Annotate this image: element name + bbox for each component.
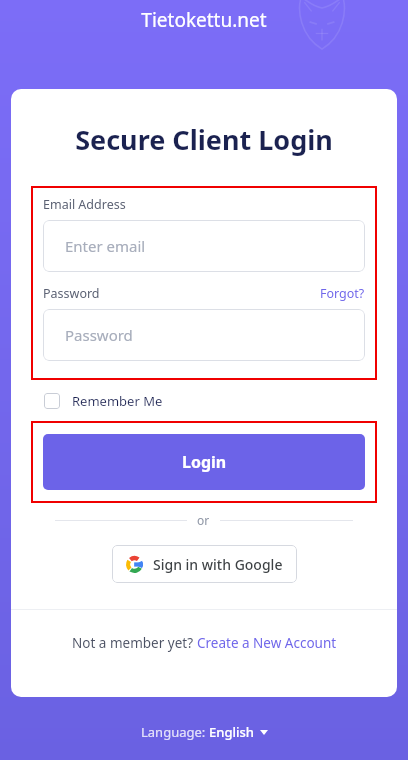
staticText: Forgot?	[320, 285, 365, 302]
staticText: Login	[182, 451, 227, 473]
staticText: Not a member yet?	[72, 634, 197, 652]
staticText: Tietokettu.net	[141, 7, 267, 33]
staticText: Secure Client Login	[11, 121, 397, 158]
staticText: Enter email	[65, 236, 146, 256]
staticText: or	[197, 512, 210, 528]
button[interactable]: Login	[43, 434, 365, 490]
button[interactable]: Language:	[141, 723, 268, 741]
button[interactable]: Password	[43, 309, 365, 361]
other: Google logo	[126, 556, 143, 573]
button[interactable]: Google logo	[112, 545, 297, 583]
staticText: Language:	[141, 723, 209, 741]
staticText: Email Address	[43, 196, 126, 213]
staticText: Password	[65, 325, 133, 345]
button[interactable]: Enter email	[43, 220, 365, 272]
staticText: Create a New Account	[197, 634, 337, 652]
staticText: Sign in with Google	[153, 555, 283, 574]
button[interactable]: Create a New Account	[197, 634, 337, 652]
staticText: English	[209, 723, 254, 741]
staticText: Password	[43, 285, 100, 302]
button[interactable]: Remember Me	[44, 389, 163, 413]
button[interactable]: Forgot?	[320, 285, 365, 302]
staticText: Remember Me	[72, 392, 163, 410]
